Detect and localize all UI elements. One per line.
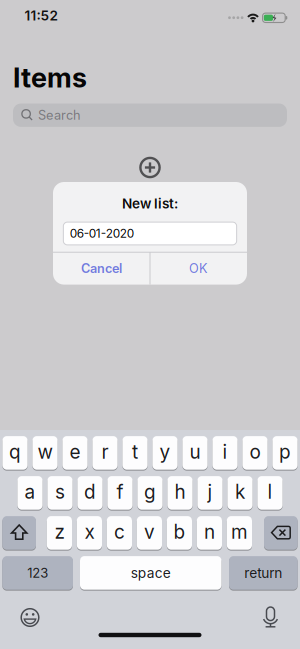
- staticText: d: [84, 480, 96, 503]
- button[interactable]: 123: [2, 556, 73, 590]
- staticText: t: [132, 440, 138, 463]
- staticText: Cancel: [81, 261, 122, 276]
- button[interactable]: k: [227, 476, 253, 510]
- button[interactable]: Add list: [139, 156, 161, 178]
- button[interactable]: g: [137, 476, 163, 510]
- button[interactable]: u: [182, 436, 208, 470]
- staticText: j: [207, 480, 212, 503]
- button[interactable]: Emoji: [20, 607, 40, 627]
- button[interactable]: x: [77, 516, 102, 550]
- button[interactable]: Search: [13, 103, 287, 127]
- button[interactable]: Cancel: [53, 252, 149, 284]
- button[interactable]: t: [122, 436, 148, 470]
- staticText: l: [267, 480, 272, 503]
- staticText: f: [116, 480, 123, 503]
- button[interactable]: h: [167, 476, 193, 510]
- staticText: i: [222, 440, 227, 463]
- button[interactable]: i: [212, 436, 238, 470]
- button[interactable]: f: [107, 476, 133, 510]
- staticText: New list:: [122, 195, 178, 212]
- button[interactable]: s: [47, 476, 73, 510]
- staticText: Search: [38, 107, 81, 123]
- button[interactable]: e: [62, 436, 88, 470]
- button[interactable]: l: [257, 476, 283, 510]
- button[interactable]: r: [92, 436, 118, 470]
- staticText: g: [144, 480, 156, 503]
- staticText: space: [131, 565, 171, 581]
- button[interactable]: Delete: [264, 516, 298, 550]
- button[interactable]: v: [137, 516, 162, 550]
- button[interactable]: OK: [150, 252, 246, 284]
- staticText: p: [279, 440, 291, 463]
- staticText: k: [235, 480, 245, 503]
- staticText: c: [114, 520, 125, 543]
- staticText: y: [159, 440, 170, 463]
- button[interactable]: q: [2, 436, 28, 470]
- button[interactable]: n: [197, 516, 222, 550]
- button[interactable]: p: [272, 436, 298, 470]
- button[interactable]: a: [17, 476, 43, 510]
- staticText: h: [174, 480, 185, 503]
- button[interactable]: b: [167, 516, 192, 550]
- staticText: s: [55, 480, 65, 503]
- staticText: z: [54, 520, 64, 543]
- button[interactable]: y: [152, 436, 178, 470]
- staticText: 11:52: [24, 7, 57, 24]
- staticText: w: [37, 440, 52, 463]
- button[interactable]: m: [227, 516, 252, 550]
- button[interactable]: Shift: [2, 516, 36, 550]
- staticText: o: [249, 440, 260, 463]
- staticText: a: [24, 480, 35, 503]
- staticText: return: [244, 565, 282, 581]
- staticText: e: [69, 440, 80, 463]
- staticText: OK: [189, 261, 208, 276]
- staticText: m: [231, 520, 248, 543]
- staticText: b: [173, 520, 185, 543]
- staticText: q: [9, 440, 21, 463]
- button[interactable]: Dictate: [260, 606, 281, 628]
- staticText: 06-01-2020: [70, 226, 134, 241]
- button[interactable]: d: [77, 476, 103, 510]
- staticText: u: [189, 440, 200, 463]
- button[interactable]: c: [107, 516, 132, 550]
- staticText: 123: [27, 565, 48, 581]
- button[interactable]: z: [47, 516, 72, 550]
- staticText: v: [144, 520, 155, 543]
- button[interactable]: return: [229, 556, 298, 590]
- button[interactable]: space: [80, 556, 221, 590]
- staticText: x: [84, 520, 94, 543]
- staticText: Items: [13, 61, 87, 94]
- button[interactable]: w: [32, 436, 58, 470]
- button[interactable]: j: [197, 476, 223, 510]
- staticText: r: [101, 440, 108, 463]
- button[interactable]: o: [242, 436, 268, 470]
- staticText: n: [204, 520, 215, 543]
